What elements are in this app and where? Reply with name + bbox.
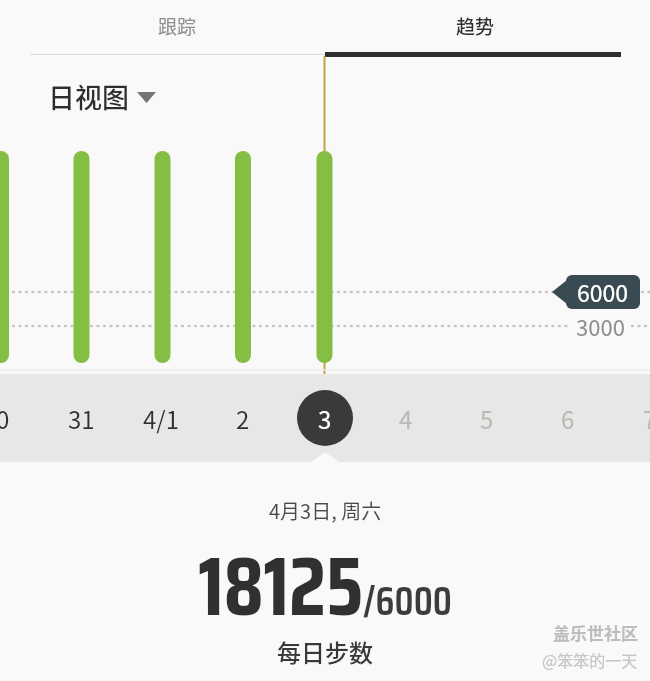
staticText: 5 [480, 401, 494, 436]
staticText: 日视图 [48, 77, 129, 116]
staticText: 趋势 [456, 12, 495, 40]
button[interactable]: 6 [528, 394, 608, 442]
staticText: 盖乐世社区 [553, 620, 638, 645]
staticText: 0 [0, 401, 10, 436]
button[interactable]: 5 [447, 394, 527, 442]
staticText: 3 [318, 401, 332, 436]
button[interactable]: 4/1 [121, 394, 201, 442]
staticText: 3000 [576, 310, 625, 342]
staticText: 4 [399, 401, 413, 436]
staticText: 4月3日, 周六 [269, 496, 382, 525]
button[interactable]: 7 [610, 394, 650, 442]
staticText: 2 [236, 401, 250, 436]
staticText: 6000 [577, 275, 629, 308]
staticText: 7 [643, 401, 650, 436]
staticText: 6 [561, 401, 575, 436]
staticText: 跟踪 [158, 12, 197, 40]
staticText: 31 [68, 401, 95, 436]
button[interactable]: 31 [41, 394, 121, 442]
button[interactable]: 日视图 [48, 77, 156, 116]
button[interactable]: 4 [366, 394, 446, 442]
button[interactable]: 3 [297, 390, 353, 446]
staticText: 18125/6000 [198, 522, 452, 651]
button[interactable]: 跟踪 [102, 0, 252, 52]
button[interactable]: 2 [203, 394, 283, 442]
staticText: 4/1 [143, 401, 180, 436]
button[interactable]: 趋势 [400, 0, 550, 52]
button[interactable]: 0 [0, 394, 43, 442]
staticText: 每日步数 [277, 634, 373, 669]
staticText: @笨笨的一天 [542, 648, 638, 671]
